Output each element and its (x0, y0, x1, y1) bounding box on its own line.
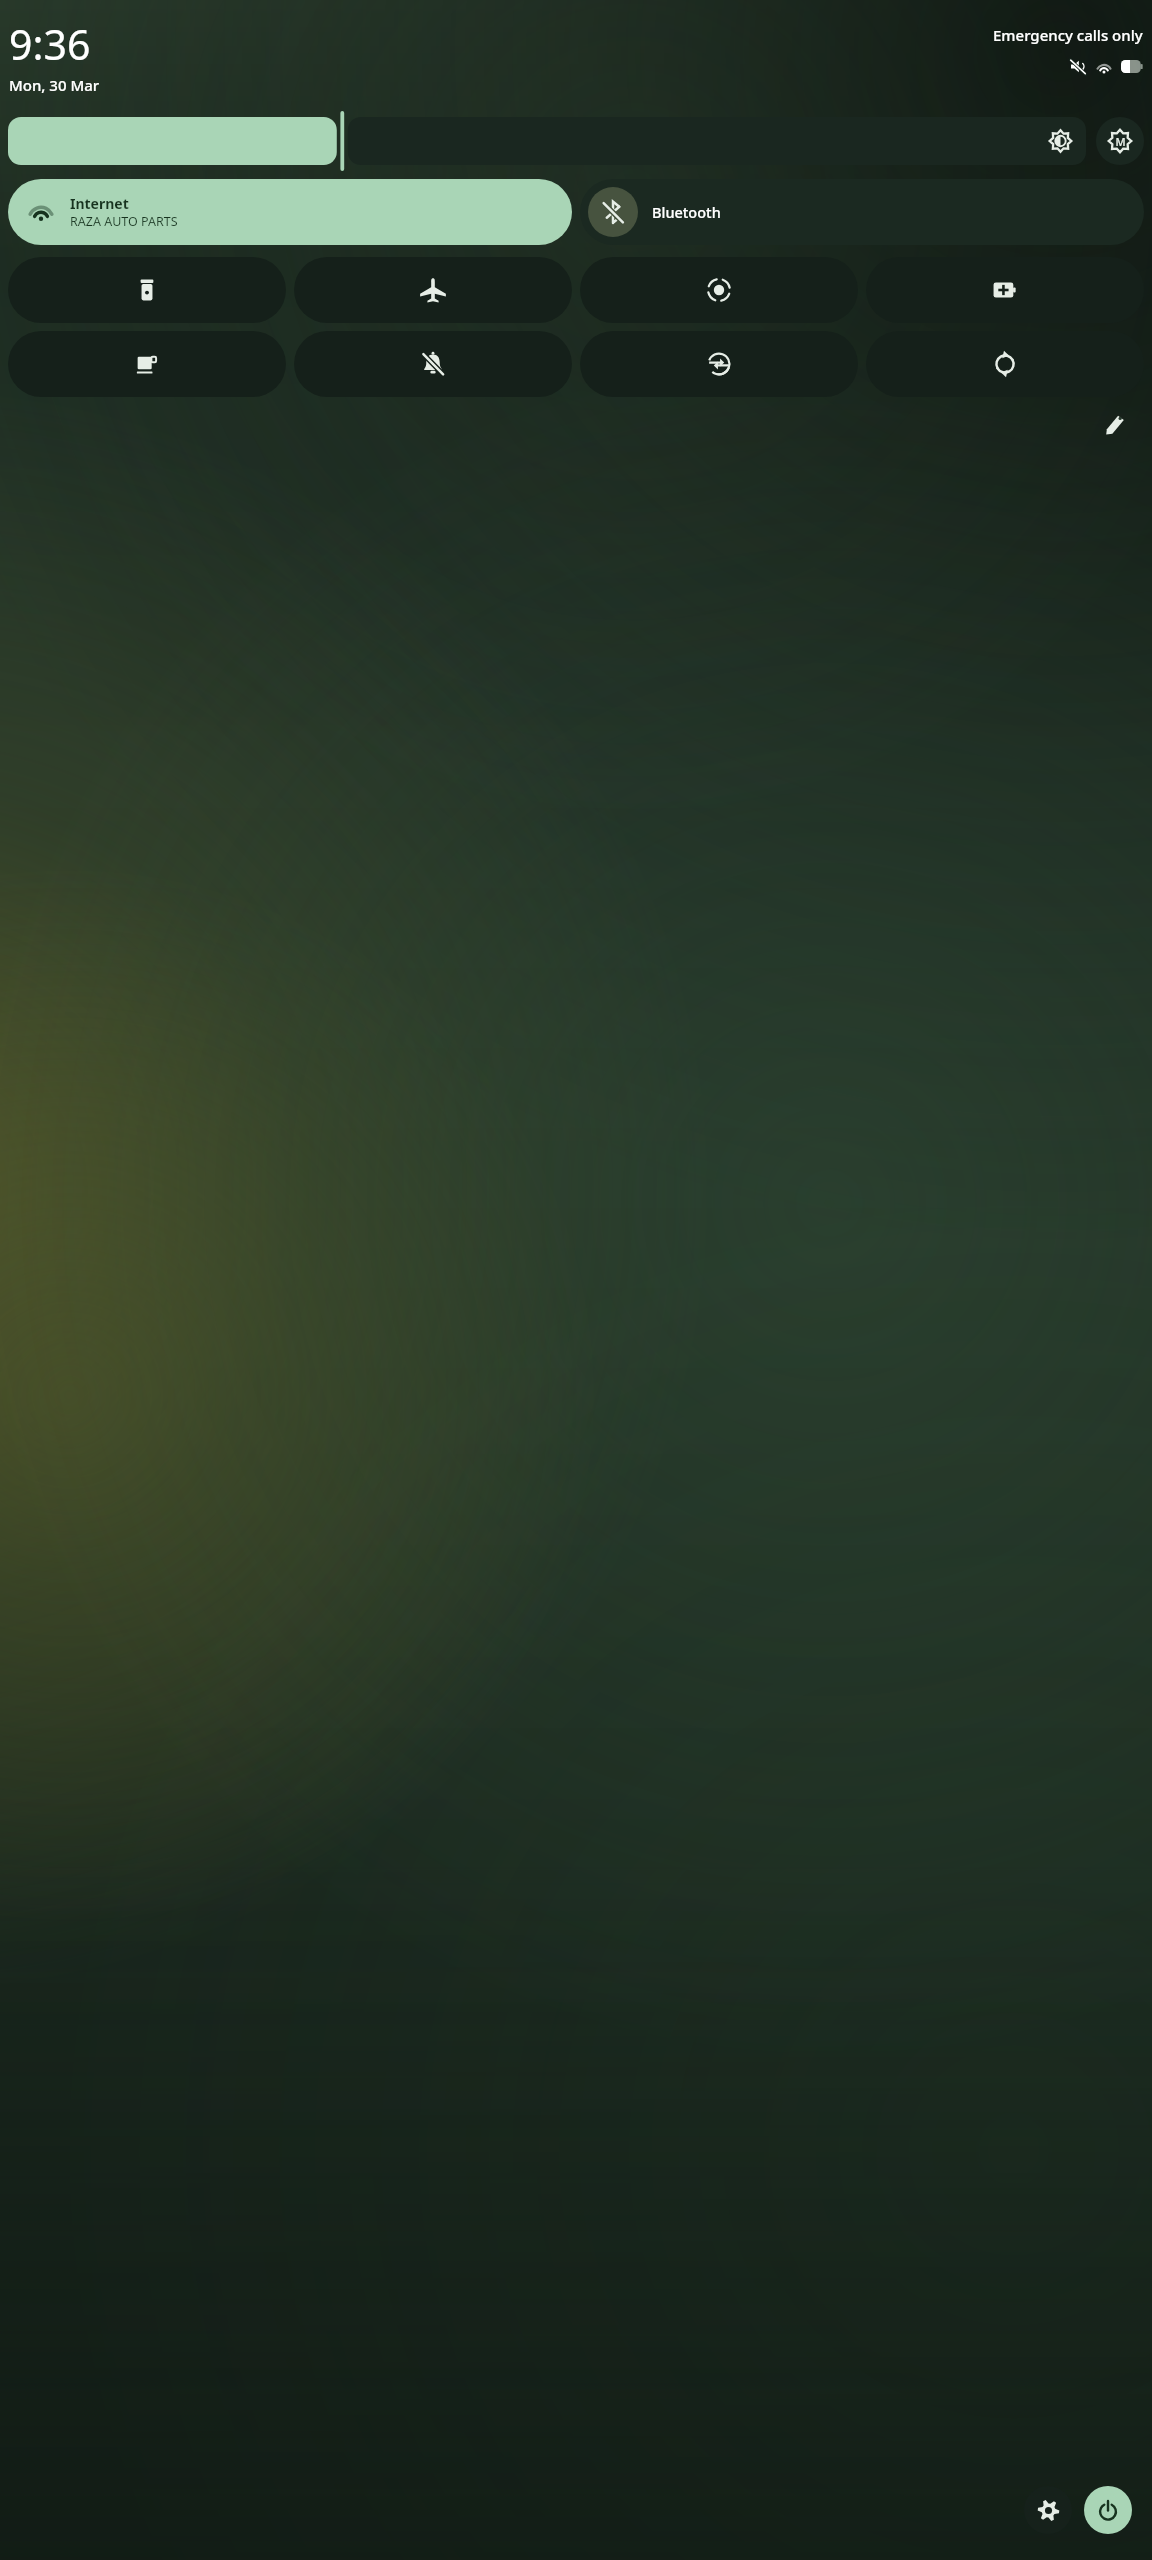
button[interactable]: Edit tiles (1092, 401, 1138, 447)
button[interactable]: Battery saver (866, 257, 1144, 323)
staticText: Mon, 30 Mar (9, 75, 100, 95)
staticText: M (1115, 134, 1126, 149)
button[interactable]: Airplane mode (294, 257, 572, 323)
button[interactable]: Internet (8, 179, 572, 245)
staticText: 9:36 (9, 16, 91, 72)
button[interactable]: Keep awake (8, 331, 286, 397)
staticText: Internet (70, 194, 129, 213)
button[interactable]: Flashlight (8, 257, 286, 323)
staticText: Emergency calls only (993, 25, 1143, 45)
button[interactable]: Location (580, 257, 858, 323)
button[interactable]: Auto rotate (866, 331, 1144, 397)
staticText: Bluetooth (652, 202, 721, 222)
button[interactable]: Mute notifications (294, 331, 572, 397)
button[interactable]: Data saver (580, 331, 858, 397)
button[interactable]: Brightness (8, 117, 1086, 165)
staticText: RAZA AUTO PARTS (70, 213, 178, 230)
button[interactable]: Brightness mode (1096, 117, 1144, 165)
button[interactable]: Bluetooth (580, 179, 1144, 245)
button[interactable]: Power (1084, 2486, 1132, 2534)
button[interactable]: Settings (1024, 2486, 1072, 2534)
